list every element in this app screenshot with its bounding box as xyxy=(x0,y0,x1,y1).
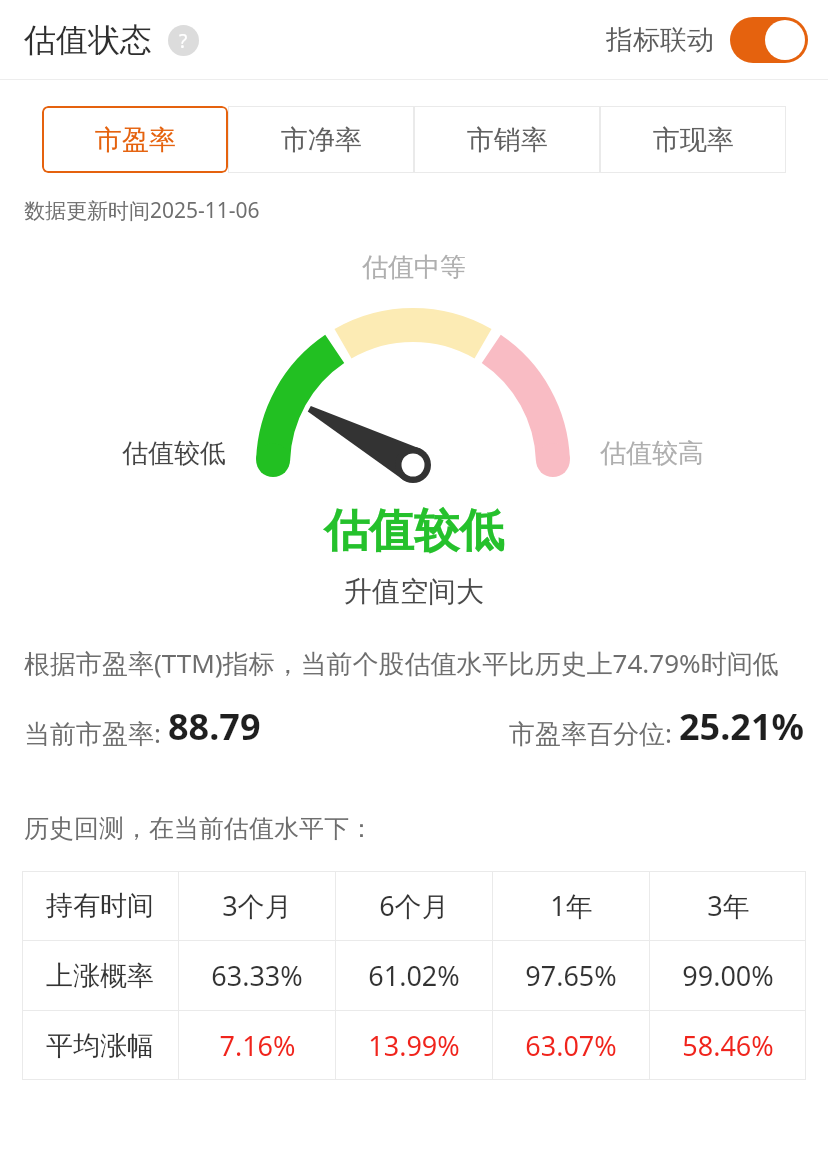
staticText: 13.99% xyxy=(368,1027,460,1064)
staticText: 市销率 xyxy=(467,123,548,157)
staticText: ? xyxy=(179,28,188,54)
button[interactable]: 指标联动开关 xyxy=(730,17,808,63)
staticText: 25.21% xyxy=(679,702,804,751)
staticText: 市净率 xyxy=(281,123,362,157)
staticText: 估值状态 xyxy=(24,20,152,60)
button[interactable]: 市销率 xyxy=(414,106,600,173)
staticText: 估值较低 xyxy=(122,437,226,470)
staticText: 持有时间 xyxy=(46,889,154,923)
staticText: 1年 xyxy=(550,887,593,924)
staticText: 市现率 xyxy=(653,123,734,157)
staticText: 88.79 xyxy=(168,702,261,751)
staticText: 升值空间大 xyxy=(344,574,484,609)
staticText: 根据市盈率(TTM)指标，当前个股估值水平比历史上74.79%时间低 xyxy=(24,645,779,681)
staticText: 97.65% xyxy=(525,957,617,994)
button[interactable]: 帮助 xyxy=(168,25,199,56)
button[interactable]: 市现率 xyxy=(600,106,786,173)
staticText: 估值较高 xyxy=(600,437,704,470)
staticText: 58.46% xyxy=(682,1027,774,1064)
staticText: 99.00% xyxy=(682,957,774,994)
staticText: 历史回测，在当前估值水平下： xyxy=(24,813,374,844)
button[interactable]: 市净率 xyxy=(228,106,414,173)
staticText: 63.33% xyxy=(211,957,303,994)
staticText: 指标联动 xyxy=(606,23,714,57)
staticText: 3年 xyxy=(707,887,750,924)
staticText: 7.16% xyxy=(219,1027,296,1064)
staticText: 3个月 xyxy=(222,887,292,924)
staticText: 市盈率百分位: xyxy=(509,715,679,751)
staticText: 61.02% xyxy=(368,957,460,994)
button[interactable]: 市盈率 xyxy=(42,106,228,173)
staticText: 6个月 xyxy=(379,887,449,924)
staticText: 市盈率 xyxy=(95,123,176,157)
staticText: 估值较低 xyxy=(324,503,504,560)
staticText: 63.07% xyxy=(525,1027,617,1064)
staticText: 平均涨幅 xyxy=(46,1029,154,1063)
staticText: 数据更新时间2025-11-06 xyxy=(24,196,260,225)
staticText: 当前市盈率: xyxy=(24,715,168,751)
staticText: 上涨概率 xyxy=(46,959,154,993)
staticText: 估值中等 xyxy=(362,251,466,284)
